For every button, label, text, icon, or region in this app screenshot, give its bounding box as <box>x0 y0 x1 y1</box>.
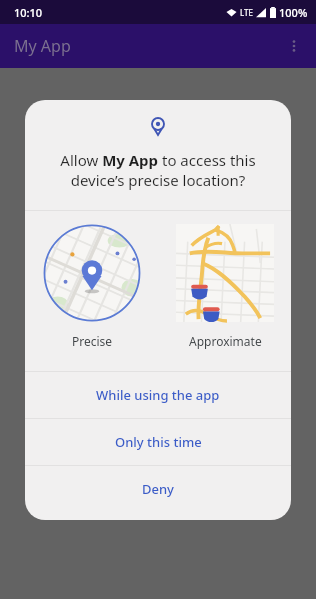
staticText: Precise <box>72 333 113 349</box>
staticText: LTE <box>240 7 253 18</box>
staticText: 100% <box>279 5 308 20</box>
staticText: My App <box>14 35 71 57</box>
staticText: Approximate <box>189 333 262 349</box>
button[interactable]: While using the app <box>25 372 291 418</box>
staticText: Deny <box>142 480 174 498</box>
staticText: Only this time <box>115 433 202 451</box>
button[interactable]: Only this time <box>25 419 291 465</box>
staticText: While using the app <box>96 386 220 404</box>
staticText: 10:10 <box>14 5 43 20</box>
button[interactable]: Deny <box>25 466 291 512</box>
button[interactable] <box>43 224 141 322</box>
staticText: Allow My App to access this device’s pre… <box>43 150 273 190</box>
button[interactable]: More options <box>280 32 308 60</box>
button[interactable] <box>176 224 274 322</box>
